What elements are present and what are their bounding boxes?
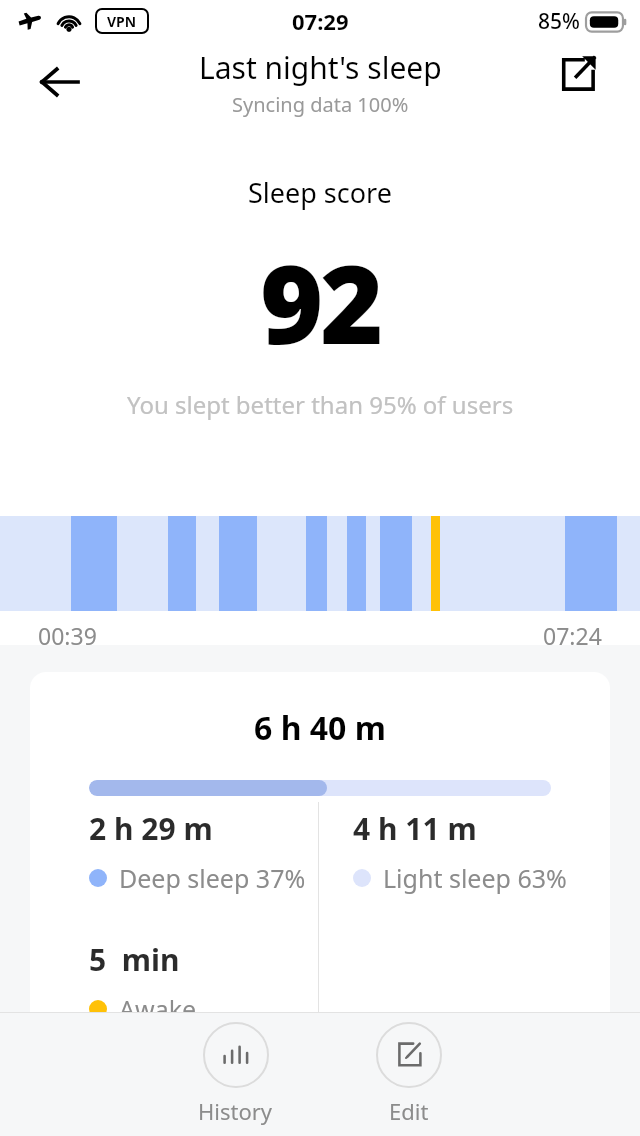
staticText: Sleep score [248, 174, 392, 211]
staticText: 85% [538, 7, 580, 36]
staticText: Awake [119, 992, 197, 1026]
staticText: 07:24 [543, 620, 602, 651]
button[interactable]: History [190, 1012, 281, 1136]
button[interactable]: Back [24, 46, 96, 118]
staticText: History [198, 1096, 273, 1126]
staticText: 00:39 [38, 620, 97, 651]
staticText: Light sleep 63% [383, 861, 567, 895]
button[interactable]: 6 h 40 m [30, 672, 610, 1032]
staticText: 5 min [89, 939, 180, 980]
staticText: You slept better than 95% of users [127, 388, 514, 421]
staticText: 07:29 [292, 6, 349, 36]
button[interactable]: Share [542, 38, 614, 110]
staticText: Deep sleep 37% [119, 861, 306, 895]
staticText: 2 h 29 m [89, 808, 213, 849]
staticText: Edit [389, 1096, 429, 1126]
staticText: Syncing data 100% [232, 91, 409, 118]
staticText: 6 h 40 m [30, 706, 610, 750]
staticText: 92 [260, 229, 381, 376]
staticText: 4 h 11 m [353, 808, 477, 849]
staticText: VPN [107, 12, 137, 31]
button[interactable]: Edit [368, 1012, 450, 1136]
staticText: Last night's sleep [199, 47, 442, 88]
